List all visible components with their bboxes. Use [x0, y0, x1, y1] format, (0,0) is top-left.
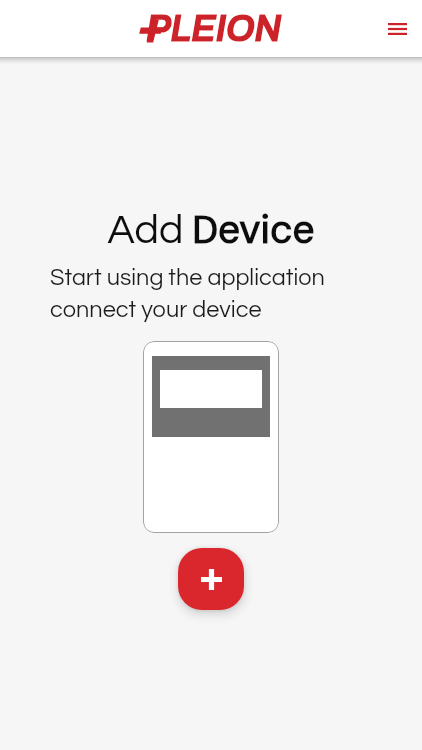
- staticText: PLEION: [146, 9, 282, 49]
- button[interactable]: Add device: [178, 548, 244, 610]
- staticText: Start using the application connect your…: [50, 266, 325, 322]
- staticText: Add Device: [107, 204, 315, 255]
- button[interactable]: Menu: [375, 7, 419, 51]
